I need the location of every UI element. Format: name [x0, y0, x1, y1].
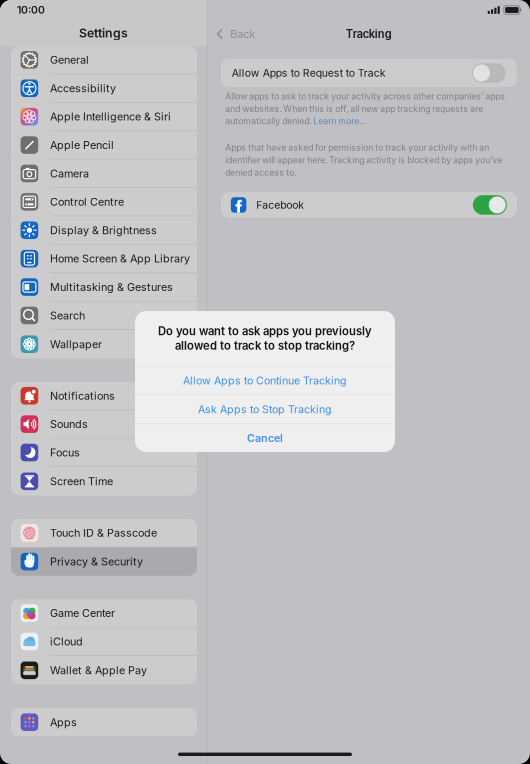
staticText: Accessibility [50, 82, 116, 95]
button[interactable]: Back [208, 22, 255, 46]
staticText: Apps [50, 716, 77, 729]
button[interactable]: Control Centre [11, 188, 197, 216]
button[interactable]: iCloud [11, 628, 197, 656]
button[interactable]: Cancel [135, 424, 395, 452]
staticText: and websites. When this is off, all new … [225, 103, 483, 114]
button[interactable]: Accessibility [11, 74, 197, 103]
staticText: Search [50, 309, 85, 322]
button[interactable]: Display & Brightness [11, 216, 197, 245]
staticText: Camera [50, 167, 89, 180]
staticText: Home Screen & App Library [50, 252, 190, 265]
button[interactable]: Apps [11, 708, 197, 736]
staticText: allowed to track to stop tracking? [175, 339, 355, 353]
button[interactable]: Camera [11, 160, 197, 188]
button[interactable]: Sounds [11, 410, 197, 439]
button[interactable]: Apple Intelligence & Siri [11, 103, 197, 131]
staticText: Wallpaper [50, 338, 102, 351]
button[interactable]: Privacy & Security [11, 547, 197, 576]
staticText: Screen Time [50, 475, 113, 488]
staticText: automatically denied. [225, 116, 313, 126]
button[interactable]: Learn more… [313, 116, 366, 126]
button[interactable]: General [11, 46, 197, 74]
staticText: Apps that have asked for permission to t… [225, 142, 489, 153]
button[interactable]: Ask Apps to Stop Tracking [135, 395, 395, 423]
staticText: Cancel [247, 432, 283, 444]
staticText: Do you want to ask apps you previously [158, 324, 372, 338]
staticText: denied access to. [225, 167, 296, 178]
staticText: Multitasking & Gestures [50, 280, 173, 294]
button[interactable]: Focus [11, 439, 197, 467]
staticText: Privacy & Security [50, 555, 143, 568]
staticText: Wallet & Apple Pay [50, 664, 147, 677]
staticText: Apple Pencil [50, 138, 114, 152]
staticText: Apple Intelligence & Siri [50, 110, 171, 123]
staticText: Settings [79, 26, 128, 40]
staticText: Facebook [256, 199, 304, 211]
staticText: Control Centre [50, 195, 124, 208]
button[interactable]: Multitasking & Gestures [11, 273, 197, 302]
staticText: iCloud [50, 635, 83, 648]
staticText: Learn more… [313, 116, 366, 126]
staticText: Sounds [50, 418, 88, 431]
staticText: Allow apps to ask to track your activity… [225, 91, 505, 101]
button[interactable]: Search [11, 302, 197, 330]
staticText: Tracking [346, 27, 392, 41]
staticText: Display & Brightness [50, 224, 157, 237]
button[interactable]: Home Screen & App Library [11, 245, 197, 273]
staticText: General [50, 53, 89, 66]
button[interactable]: Notifications [11, 382, 197, 410]
staticText: Allow Apps to Request to Track [232, 67, 386, 79]
button[interactable]: Wallet & Apple Pay [11, 656, 197, 684]
staticText: Allow Apps to Continue Tracking [183, 374, 347, 387]
staticText: Touch ID & Passcode [50, 526, 157, 539]
staticText: Focus [50, 446, 80, 459]
button[interactable]: Game Center [11, 599, 197, 628]
staticText: 10:00 [17, 4, 45, 16]
button[interactable]: Wallpaper [11, 330, 197, 358]
button[interactable]: Touch ID & Passcode [11, 519, 197, 547]
staticText: Game Center [50, 607, 115, 620]
button[interactable]: Screen Time [11, 467, 197, 495]
button[interactable]: Apple Pencil [11, 131, 197, 160]
staticText: identifier will appear here. Tracking ac… [225, 155, 502, 165]
staticText: Back [230, 27, 255, 41]
staticText: Notifications [50, 389, 115, 402]
staticText: Ask Apps to Stop Tracking [198, 403, 332, 416]
button[interactable]: Allow Apps to Continue Tracking [135, 367, 395, 394]
